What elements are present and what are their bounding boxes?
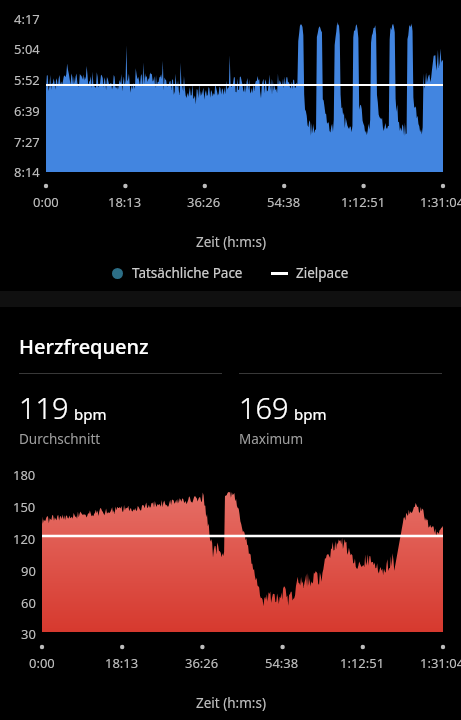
staticText: 30: [21, 625, 36, 643]
staticText: 36:26: [185, 654, 219, 672]
staticText: 4:17: [14, 10, 40, 28]
staticText: Zeit (h:m:s): [196, 694, 266, 712]
staticText: 5:04: [14, 40, 40, 58]
staticText: 180: [13, 466, 36, 484]
button[interactable]: Zielpace: [271, 264, 349, 282]
staticText: 169: [239, 388, 289, 427]
staticText: 7:27: [14, 133, 40, 151]
staticText: Zielpace: [296, 264, 349, 282]
staticText: bpm: [74, 404, 107, 424]
staticText: 54:38: [267, 193, 301, 211]
staticText: 36:26: [187, 193, 221, 211]
staticText: 150: [13, 498, 36, 516]
staticText: 1:31:04: [420, 654, 461, 672]
button[interactable]: 169: [239, 373, 442, 448]
staticText: 120: [13, 530, 36, 548]
button[interactable]: Tatsächliche Pace: [112, 264, 243, 282]
staticText: 1:12:51: [341, 193, 386, 211]
staticText: 54:38: [265, 654, 299, 672]
staticText: 18:13: [108, 193, 142, 211]
staticText: 90: [21, 562, 36, 580]
staticText: 119: [19, 388, 69, 427]
staticText: bpm: [294, 404, 327, 424]
staticText: Herzfrequenz: [19, 333, 149, 360]
staticText: Maximum: [239, 430, 304, 448]
button[interactable]: 119: [19, 373, 222, 448]
staticText: Zeit (h:m:s): [196, 233, 266, 251]
staticText: Tatsächliche Pace: [132, 264, 243, 282]
staticText: 0:00: [29, 654, 55, 672]
staticText: 0:00: [33, 193, 59, 211]
staticText: Durchschnitt: [19, 430, 101, 448]
staticText: 1:31:04: [420, 193, 461, 211]
staticText: 8:14: [14, 163, 40, 181]
staticText: 1:12:51: [340, 654, 385, 672]
staticText: 5:52: [14, 71, 40, 89]
staticText: 60: [21, 594, 36, 612]
staticText: 6:39: [14, 102, 40, 120]
staticText: 18:13: [105, 654, 139, 672]
